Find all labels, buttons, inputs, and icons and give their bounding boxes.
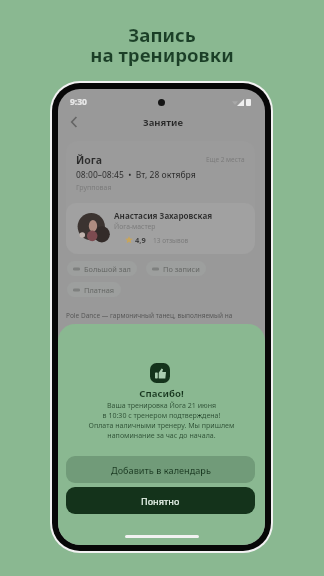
staticText: По записи: [163, 264, 200, 274]
staticText: Групповая: [76, 183, 112, 193]
staticText: Ваша тренировка Йога 21 июня в 10:30 с т…: [58, 400, 265, 440]
staticText: 4,9: [135, 235, 146, 245]
button[interactable]: По записи: [146, 261, 206, 276]
staticText: 13 отзывов: [153, 236, 189, 245]
staticText: Спасибо!: [58, 387, 265, 400]
staticText: Йога: [76, 153, 103, 167]
staticText: Понятно: [141, 495, 180, 507]
staticText: Добавить в календарь: [111, 464, 211, 476]
staticText: Занятие: [143, 116, 184, 129]
staticText: Еще 2 места: [206, 155, 245, 164]
staticText: 08:00–08:45 • Вт, 28 октября: [76, 169, 196, 181]
staticText: Платная: [84, 285, 115, 295]
button[interactable]: Добавить в календарь: [66, 456, 255, 483]
button[interactable]: Большой зал: [67, 261, 137, 276]
button[interactable]: Понятно: [66, 487, 255, 514]
button[interactable]: Back: [63, 111, 85, 133]
button[interactable]: Платная: [67, 282, 121, 297]
button[interactable]: [66, 141, 255, 254]
staticText: Йога-мастер: [114, 222, 156, 231]
staticText: Pole Dance — гармоничный танец, выполняе…: [66, 311, 233, 320]
staticText: Анастасия Захаровская: [114, 210, 213, 221]
staticText: Большой зал: [84, 264, 131, 274]
staticText: Запись на тренировки: [0, 22, 324, 68]
staticText: 9:30: [70, 96, 87, 108]
